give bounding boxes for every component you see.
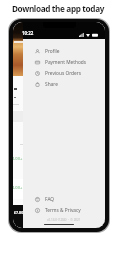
button[interactable]: Previous Orders: [23, 68, 105, 79]
staticText: Previous Orders: [45, 70, 82, 77]
button[interactable]: Profile: [23, 46, 105, 57]
staticText: FAQ: [45, 196, 55, 203]
staticText: 4.00+: [13, 185, 23, 190]
staticText: 4.00+: [13, 156, 23, 161]
staticText: Profile: [45, 48, 60, 55]
staticText: v2.14.0 (1204) · © 2021: [47, 218, 81, 222]
staticText: £7.80: [14, 210, 24, 215]
staticText: Share: [45, 81, 58, 88]
button[interactable]: Terms & Privacy: [23, 205, 105, 216]
staticText: Payment Methods: [45, 59, 87, 66]
button[interactable]: FAQ: [23, 194, 105, 205]
button[interactable]: Share: [23, 79, 105, 90]
staticText: 10:22: [22, 30, 34, 36]
button[interactable]: Payment Methods: [23, 57, 105, 68]
staticText: Download the app today: [0, 3, 117, 14]
staticText: Terms & Privacy: [45, 207, 81, 214]
